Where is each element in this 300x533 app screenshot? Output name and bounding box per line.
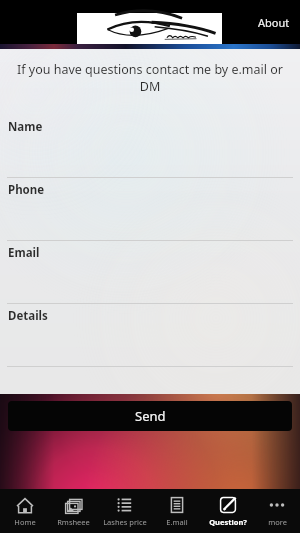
button[interactable]: Details bbox=[0, 304, 300, 367]
staticText: Lashes price bbox=[103, 517, 147, 527]
button[interactable]: Name bbox=[0, 115, 300, 178]
button[interactable]: Send bbox=[8, 401, 292, 431]
staticText: Details bbox=[8, 308, 48, 324]
staticText: Home bbox=[14, 517, 36, 527]
button[interactable]: E.mail bbox=[153, 489, 201, 533]
staticText: Email bbox=[8, 245, 40, 261]
staticText: Rmsheee bbox=[57, 517, 90, 527]
staticText: If you have questions contact me by e.ma… bbox=[14, 61, 286, 95]
staticText: Send bbox=[135, 407, 166, 425]
button[interactable]: About bbox=[248, 9, 300, 36]
button[interactable]: Phone bbox=[0, 178, 300, 241]
button[interactable]: Email bbox=[0, 241, 300, 304]
button[interactable]: Question? bbox=[201, 489, 254, 533]
button[interactable]: Lashes price bbox=[97, 489, 153, 533]
button[interactable]: Home bbox=[0, 489, 49, 533]
button[interactable]: Rmsheee logo bbox=[77, 13, 222, 44]
staticText: Question? bbox=[209, 517, 247, 527]
button[interactable]: more bbox=[254, 489, 300, 533]
staticText: E.mail bbox=[166, 517, 188, 527]
staticText: Name bbox=[8, 119, 43, 135]
button[interactable]: Rmsheee bbox=[49, 489, 97, 533]
staticText: more bbox=[268, 517, 287, 527]
staticText: About bbox=[258, 15, 290, 30]
staticText: Phone bbox=[8, 182, 45, 198]
